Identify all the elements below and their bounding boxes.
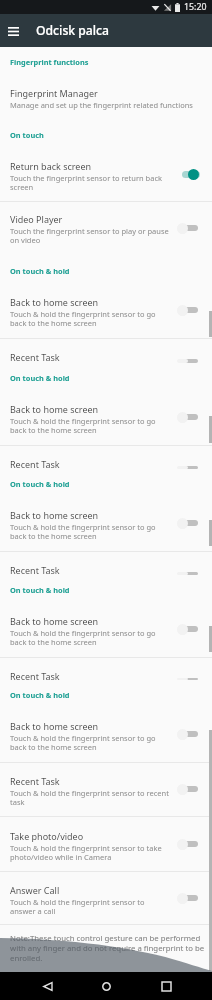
button[interactable]: Back to home screen	[0, 601, 212, 657]
button[interactable]: Recent Task	[0, 446, 212, 469]
button[interactable]: Fingerprint functions	[0, 47, 212, 73]
button[interactable]: Home	[93, 973, 119, 999]
staticText: Recent Task	[10, 775, 60, 787]
button[interactable]: Back	[34, 973, 60, 999]
staticText: Manage and set up the fingerprint relate…	[10, 100, 193, 110]
staticText: Video Player	[10, 213, 63, 225]
button[interactable]: Back to home screen	[0, 389, 212, 445]
staticText: Fingerprint functions	[10, 57, 89, 67]
staticText: On touch & hold	[10, 266, 70, 276]
button[interactable]: Recent Task	[0, 658, 212, 680]
button[interactable]: Back to home screen	[0, 495, 212, 551]
staticText: Odcisk palca	[36, 22, 110, 39]
staticText: On touch	[10, 130, 44, 140]
staticText: Back to home screen	[10, 403, 99, 415]
button[interactable]: Recent Task	[0, 552, 212, 575]
button[interactable]: Recent Task	[0, 339, 212, 363]
staticText: Recent Task	[10, 458, 60, 469]
button[interactable]: Take photo/video	[0, 817, 212, 871]
button[interactable]: On touch & hold	[0, 469, 212, 495]
button[interactable]: On touch & hold	[0, 363, 212, 389]
staticText: Touch the fingerprint sensor to return b…	[10, 173, 170, 192]
staticText: On touch & hold	[10, 373, 70, 383]
button[interactable]: Recent Task	[0, 763, 212, 816]
staticText: Note:These touch control gesture can be …	[10, 933, 207, 963]
staticText: Back to home screen	[10, 509, 99, 521]
staticText: Touch & hold the fingerprint sensor to g…	[10, 522, 170, 541]
staticText: Touch & hold the fingerprint sensor to t…	[10, 843, 170, 862]
button[interactable]: On touch & hold	[0, 575, 212, 601]
button[interactable]: Answer Call	[0, 872, 212, 924]
staticText: Touch & hold the fingerprint sensor to g…	[10, 628, 170, 647]
button[interactable]: Open navigation menu	[0, 18, 26, 44]
button[interactable]: Fingerprint Manager	[0, 73, 212, 120]
staticText: On touch & hold	[10, 690, 70, 700]
button[interactable]: Back to home screen	[0, 282, 212, 338]
staticText: Recent Task	[10, 351, 60, 363]
staticText: Return back screen	[10, 160, 92, 172]
staticText: Fingerprint Manager	[10, 87, 98, 99]
staticText: On touch & hold	[10, 479, 70, 489]
staticText: On touch & hold	[10, 585, 70, 595]
staticText: Back to home screen	[10, 615, 99, 627]
staticText: Touch & hold the fingerprint sensor to a…	[10, 897, 170, 916]
staticText: Touch & hold the fingerprint sensor to g…	[10, 309, 170, 328]
button[interactable]: Recent apps	[153, 973, 179, 999]
staticText: Touch the fingerprint sensor to play or …	[10, 226, 170, 245]
staticText: Take photo/video	[10, 830, 84, 842]
staticText: Recent Task	[10, 670, 60, 680]
staticText: Touch & hold the fingerprint sensor to r…	[10, 788, 170, 807]
staticText: Back to home screen	[10, 296, 99, 308]
staticText: Touch & hold the fingerprint sensor to g…	[10, 733, 170, 752]
staticText: 15:20	[184, 1, 207, 13]
button[interactable]: Return back screen	[0, 146, 212, 201]
staticText: Back to home screen	[10, 720, 99, 732]
staticText: Recent Task	[10, 564, 60, 575]
button[interactable]: On touch & hold	[0, 680, 212, 706]
button[interactable]: Video Player	[0, 202, 212, 256]
staticText: Answer Call	[10, 884, 60, 896]
button[interactable]: On touch & hold	[0, 256, 212, 282]
button[interactable]: Back to home screen	[0, 706, 212, 762]
staticText: Touch & hold the fingerprint sensor to g…	[10, 416, 170, 435]
button[interactable]: On touch	[0, 120, 212, 146]
